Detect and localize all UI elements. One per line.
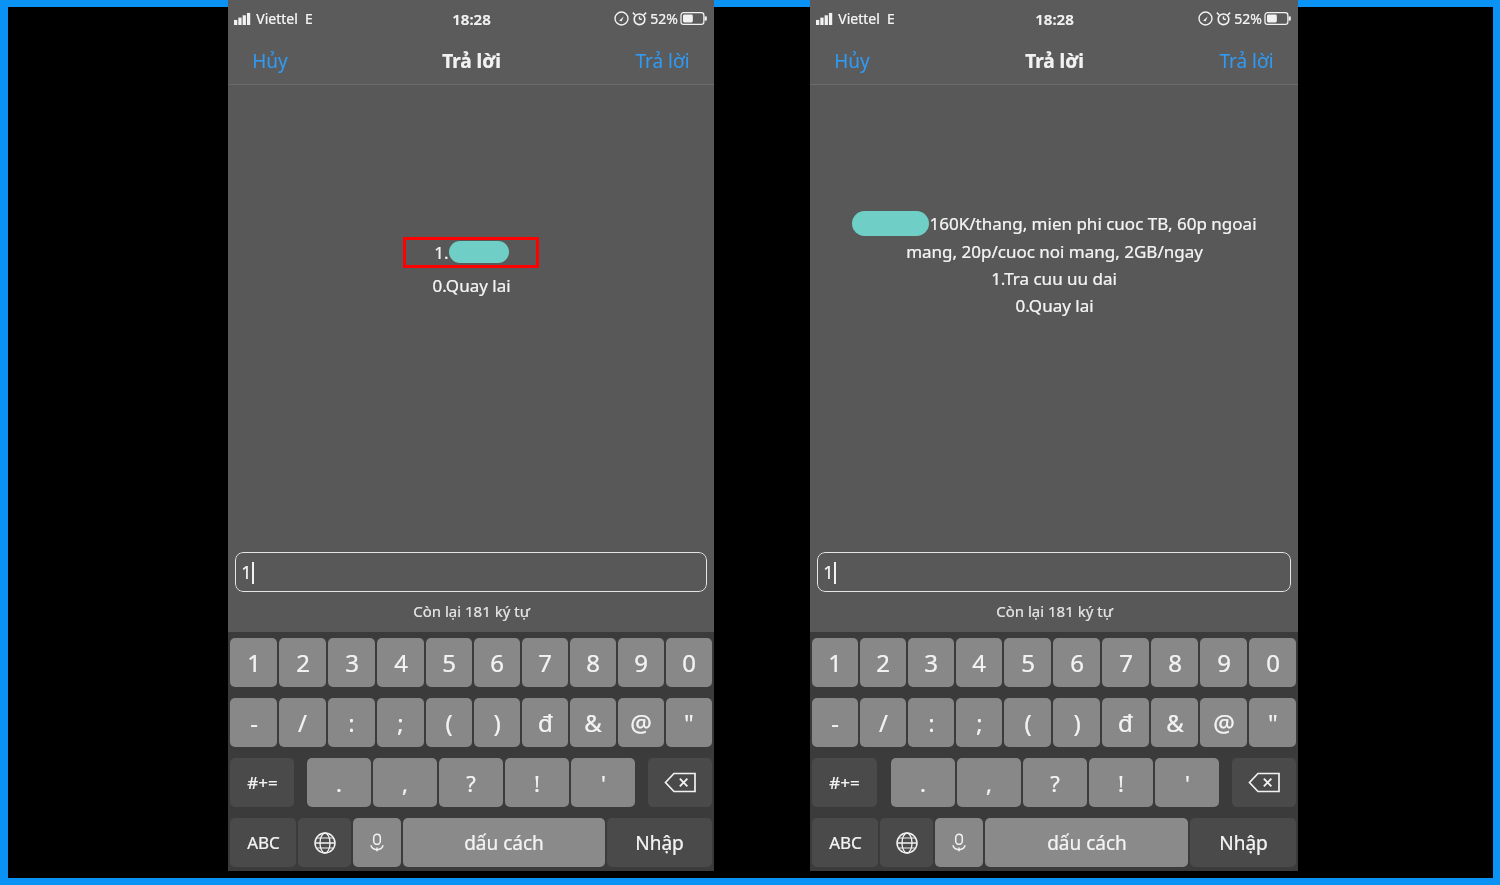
staticText: 3 [924,646,938,679]
button[interactable]: 2 [279,638,326,687]
button[interactable]: 9 [1200,638,1247,687]
button[interactable]: ( [1004,698,1051,747]
button[interactable]: . [307,758,371,807]
staticText: 1.Tra cuu uu dai [991,267,1117,290]
button[interactable]: / [860,698,906,747]
staticText: ABC [247,831,280,854]
button[interactable]: / [279,698,326,747]
button[interactable]: Hủy [822,42,882,80]
button[interactable]: ; [956,698,1002,747]
button[interactable]: Hủy [240,42,300,80]
button[interactable]: Trả lời [623,42,702,80]
button[interactable]: 8 [1151,638,1198,687]
button[interactable]: Nhập [607,818,712,867]
button[interactable]: Trả lời [1207,42,1286,80]
button[interactable]: @ [1200,698,1247,747]
button[interactable]: ) [474,698,520,747]
button[interactable]: ; [377,698,424,747]
button[interactable]: #+= [230,758,294,807]
staticText: Nhập [635,830,684,856]
button[interactable]: ! [1089,758,1153,807]
staticText: ! [1118,768,1124,798]
staticText: @ [630,706,652,739]
staticText: , [402,768,408,798]
staticText: 9 [634,646,648,679]
button[interactable]: Backspace [1232,758,1296,807]
staticText: ? [466,768,476,798]
staticText: Trả lời [1025,48,1084,74]
button[interactable]: ? [1023,758,1087,807]
button[interactable]: Voice input [353,818,401,867]
button[interactable]: đ [1102,698,1149,747]
button[interactable]: , [957,758,1021,807]
staticText: 0 [1266,646,1280,679]
button[interactable]: 2 [860,638,906,687]
button[interactable]: " [1249,698,1296,747]
button[interactable]: dấu cách [403,818,605,867]
button[interactable]: ' [571,758,635,807]
button[interactable]: ' [1155,758,1219,807]
button[interactable]: dấu cách [985,818,1188,867]
staticText: Trả lời [1219,48,1274,74]
button[interactable]: 8 [570,638,616,687]
button[interactable]: 0 [666,638,712,687]
staticText: ) [1073,706,1081,739]
staticText: dấu cách [464,830,544,856]
staticText: Viettel [838,9,880,28]
button[interactable]: #+= [812,758,877,807]
button[interactable]: 4 [956,638,1002,687]
staticText: : [928,706,935,739]
button[interactable]: 5 [1004,638,1051,687]
staticText: 3 [345,646,359,679]
button[interactable]: & [570,698,616,747]
button[interactable]: Change keyboard language [298,818,351,867]
button[interactable]: ) [1053,698,1100,747]
staticText: ( [1024,706,1032,739]
button[interactable]: đ [522,698,568,747]
button[interactable]: 3 [328,638,375,687]
button[interactable]: @ [618,698,664,747]
button[interactable]: 6 [474,638,520,687]
button[interactable]: ! [505,758,569,807]
staticText: ; [397,706,404,739]
button[interactable]: 7 [1102,638,1149,687]
staticText: #+= [829,771,860,794]
button[interactable]: & [1151,698,1198,747]
button[interactable]: ABC [230,818,296,867]
button[interactable]: 0 [1249,638,1296,687]
staticText: 6 [490,646,504,679]
button[interactable]: . [891,758,955,807]
button[interactable]: 4 [377,638,424,687]
button[interactable]: 7 [522,638,568,687]
staticText: @ [1213,706,1235,739]
staticText: " [1268,706,1278,739]
button[interactable]: ABC [812,818,878,867]
button[interactable]: 6 [1053,638,1100,687]
button[interactable]: " [666,698,712,747]
button[interactable]: 1 [235,552,707,592]
staticText: 2 [876,646,890,679]
button[interactable]: Backspace [648,758,712,807]
staticText: 9 [1217,646,1231,679]
button[interactable]: Nhập [1190,818,1296,867]
staticText: 6 [1070,646,1084,679]
button[interactable]: : [328,698,375,747]
button[interactable]: 1 [230,638,277,687]
button[interactable]: Voice input [935,818,983,867]
button[interactable]: 3 [908,638,954,687]
staticText: ) [493,706,501,739]
staticText: ' [1185,768,1190,798]
button[interactable]: , [373,758,437,807]
button[interactable]: ? [439,758,503,807]
staticText: 7 [1119,646,1133,679]
button[interactable]: : [908,698,954,747]
button[interactable]: 5 [426,638,472,687]
button[interactable]: ( [426,698,472,747]
button[interactable]: - [230,698,277,747]
button[interactable]: Change keyboard language [880,818,933,867]
button[interactable]: 9 [618,638,664,687]
staticText: Còn lại 181 ký tự [996,601,1113,621]
button[interactable]: 1 [812,638,858,687]
button[interactable]: 1 [817,552,1291,592]
button[interactable]: - [812,698,858,747]
